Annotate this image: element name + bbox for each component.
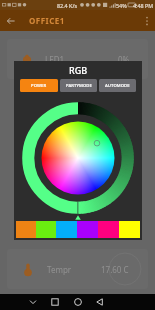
- staticText: RGB: [14, 64, 142, 76]
- staticText: 17.60 C: [101, 264, 129, 275]
- button[interactable]: Hide keyboard: [25, 294, 41, 310]
- button[interactable]: Recents: [47, 294, 63, 310]
- button[interactable]: More options: [140, 14, 154, 28]
- button[interactable]: Tempr: [7, 249, 148, 289]
- staticText: 0%: [118, 54, 130, 65]
- button[interactable]: Home: [70, 294, 86, 310]
- button[interactable]: AUTOMODE: [99, 79, 136, 92]
- button[interactable]: LED1: [7, 39, 148, 79]
- button[interactable]: PARTYMODE: [60, 79, 97, 92]
- button[interactable]: Back: [3, 13, 19, 29]
- staticText: LED1: [45, 54, 65, 65]
- button[interactable]: Back: [92, 294, 108, 310]
- button[interactable]: POWER: [20, 79, 58, 92]
- staticText: 82.4 K/s: [57, 2, 78, 9]
- staticText: POWER: [31, 83, 47, 89]
- staticText: Tempr: [47, 264, 72, 275]
- staticText: OFFICE1: [29, 15, 65, 26]
- staticText: AUTOMODE: [105, 83, 130, 89]
- staticText: 4:48 PM: [133, 2, 154, 9]
- staticText: 54%: [116, 2, 127, 9]
- staticText: PARTYMODE: [66, 83, 92, 89]
